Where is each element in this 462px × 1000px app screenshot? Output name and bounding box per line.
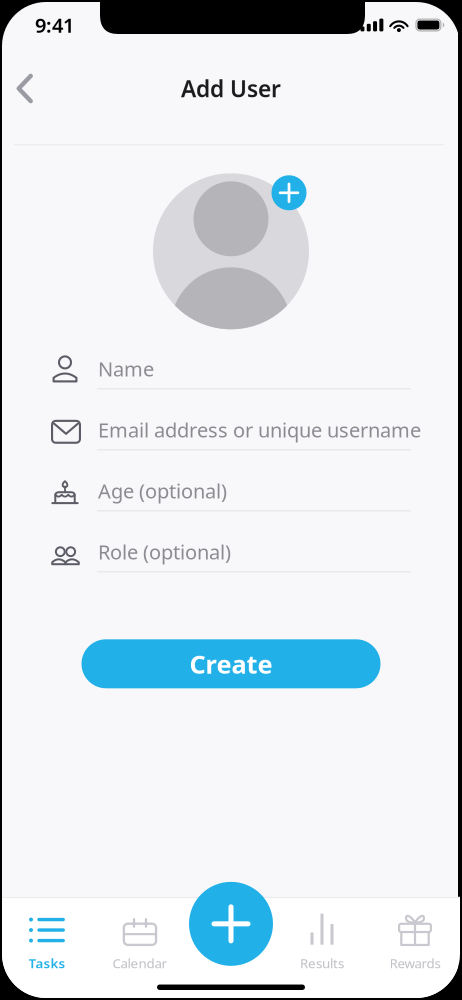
button[interactable]: Calendar — [94, 898, 186, 998]
staticText: Name — [98, 355, 154, 382]
staticText: Age (optional) — [98, 477, 227, 504]
button[interactable]: Create — [81, 639, 380, 688]
button[interactable]: Add — [189, 882, 273, 966]
staticText: Tasks — [28, 954, 65, 972]
button[interactable]: Tasks — [0, 898, 94, 998]
staticText: Email address or unique username — [98, 416, 421, 443]
staticText: Rewards — [389, 954, 440, 972]
button[interactable]: Email address or unique username — [0, 389, 462, 450]
button[interactable]: Role (optional) — [0, 511, 462, 572]
button[interactable]: Name — [0, 328, 462, 389]
staticText: 9:41 — [35, 12, 74, 38]
button[interactable]: Results — [276, 898, 368, 998]
staticText: Results — [300, 954, 344, 972]
staticText: Add User — [181, 73, 281, 103]
button[interactable]: Back — [2, 65, 48, 111]
button[interactable]: Add photo — [271, 175, 306, 210]
button[interactable]: Rewards — [368, 898, 462, 998]
staticText: Create — [189, 647, 272, 681]
staticText: Role (optional) — [98, 538, 231, 565]
staticText: Calendar — [112, 954, 167, 972]
button[interactable]: Age (optional) — [0, 450, 462, 511]
